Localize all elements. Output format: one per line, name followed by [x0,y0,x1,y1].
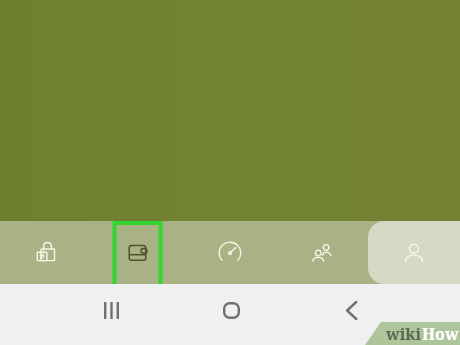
button[interactable]: Back [331,290,371,330]
button[interactable]: Activity [184,221,276,284]
button[interactable]: Wishlist [0,221,92,284]
button[interactable]: Profile [368,221,460,284]
button[interactable]: Recents [91,290,131,330]
button[interactable]: Friends [276,221,368,284]
button[interactable]: Wallet [92,221,184,284]
button[interactable]: Home [211,290,251,330]
staticText: wiki [386,323,422,345]
staticText: How [422,323,459,345]
